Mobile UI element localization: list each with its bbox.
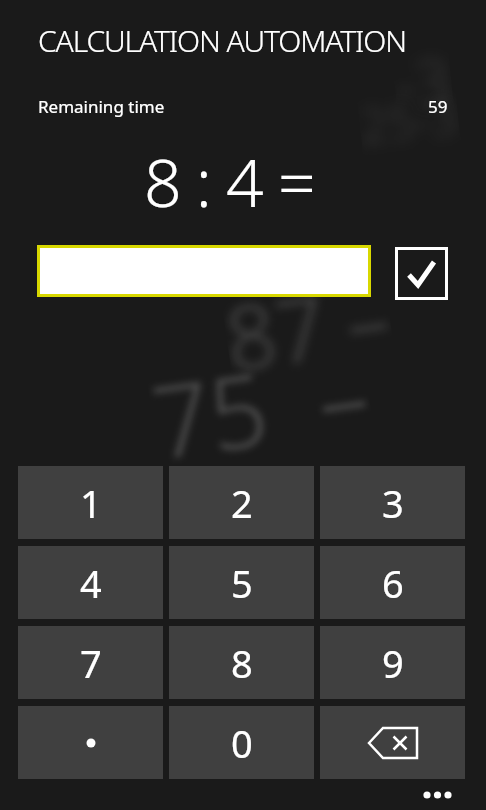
staticText: 8 — [231, 637, 253, 689]
staticText: 75 – — [144, 324, 377, 488]
staticText: 5 — [231, 557, 253, 609]
button[interactable]: 9 — [320, 626, 465, 699]
staticText: 25-3 — [357, 83, 461, 158]
staticText: 6 — [382, 557, 404, 609]
button[interactable]: 3 — [320, 466, 465, 539]
button[interactable]: 4 — [18, 546, 163, 619]
staticText: 2 — [231, 477, 253, 529]
button[interactable]: 5 — [169, 546, 314, 619]
staticText: 4 — [80, 557, 102, 609]
button[interactable]: 6 — [320, 546, 465, 619]
staticText: 3 — [382, 477, 404, 529]
staticText: 9 — [382, 637, 404, 689]
staticText: 0 — [231, 717, 253, 769]
button[interactable] — [395, 247, 448, 300]
button[interactable]: 7 — [18, 626, 163, 699]
staticText: -3 — [391, 37, 455, 127]
staticText: 87 – — [219, 257, 397, 396]
staticText: 7 — [80, 637, 102, 689]
button[interactable] — [420, 788, 456, 802]
button[interactable] — [37, 245, 371, 297]
button[interactable]: 0 — [169, 706, 314, 779]
staticText: 1 — [80, 477, 102, 529]
button[interactable]: 1 — [18, 466, 163, 539]
button[interactable]: 2 — [169, 466, 314, 539]
button[interactable] — [320, 706, 465, 779]
button[interactable] — [18, 706, 163, 779]
staticText: 59 — [428, 95, 448, 118]
staticText: Remaining time — [38, 95, 165, 118]
staticText: 8 : 4 = — [144, 136, 315, 226]
button[interactable]: 8 — [169, 626, 314, 699]
staticText: CALCULATION AUTOMATION — [38, 20, 406, 61]
